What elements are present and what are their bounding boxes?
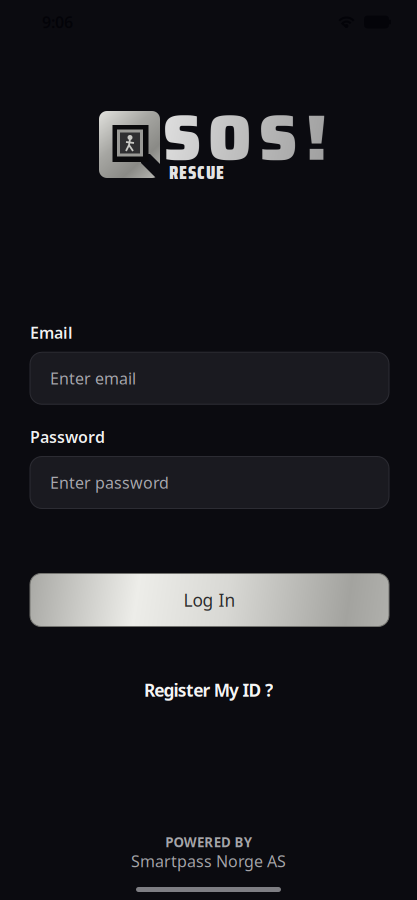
- staticText: Register My ID ?: [144, 678, 273, 701]
- staticText: Password: [30, 426, 105, 447]
- staticText: Smartpass Norge AS: [131, 850, 286, 872]
- button[interactable]: Register My ID ?: [144, 678, 273, 701]
- staticText: Enter password: [50, 472, 169, 493]
- button[interactable]: Enter email: [30, 352, 389, 404]
- staticText: Log In: [183, 588, 235, 611]
- staticText: Email: [30, 322, 73, 343]
- staticText: Enter email: [50, 368, 136, 389]
- staticText: POWERED BY: [165, 833, 252, 851]
- button[interactable]: Log In: [30, 573, 389, 626]
- staticText: RESCUE: [169, 158, 224, 187]
- button[interactable]: Enter password: [30, 456, 389, 508]
